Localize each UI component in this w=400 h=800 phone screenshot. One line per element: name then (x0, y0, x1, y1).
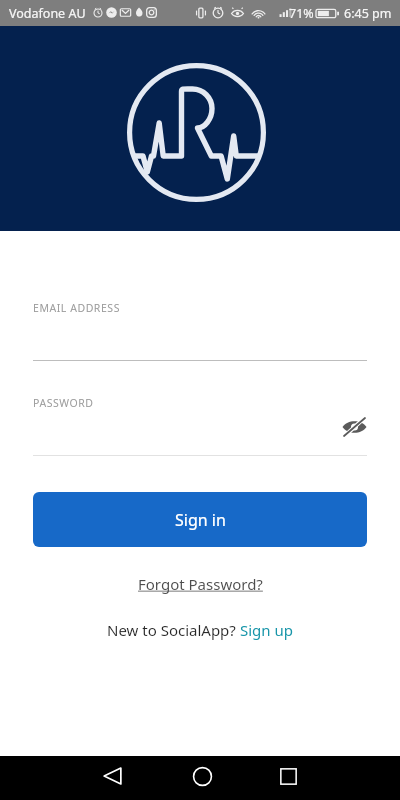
button[interactable]: Sign up (240, 620, 293, 640)
button[interactable]: Show password (338, 412, 370, 442)
button[interactable]: Forgot Password? (132, 570, 269, 598)
button[interactable]: Back (88, 759, 136, 793)
staticText: 6:45 pm (344, 5, 392, 22)
button[interactable]: Recents (264, 759, 312, 793)
button[interactable]: Sign in (33, 492, 367, 547)
staticText: Vodafone AU (9, 5, 86, 22)
button[interactable]: Home (178, 759, 226, 793)
staticText: EMAIL ADDRESS (33, 301, 120, 315)
staticText: Sign in (175, 509, 226, 531)
staticText: New to SocialApp? (107, 620, 240, 640)
staticText: 71% (289, 5, 314, 22)
staticText: PASSWORD (33, 396, 94, 410)
